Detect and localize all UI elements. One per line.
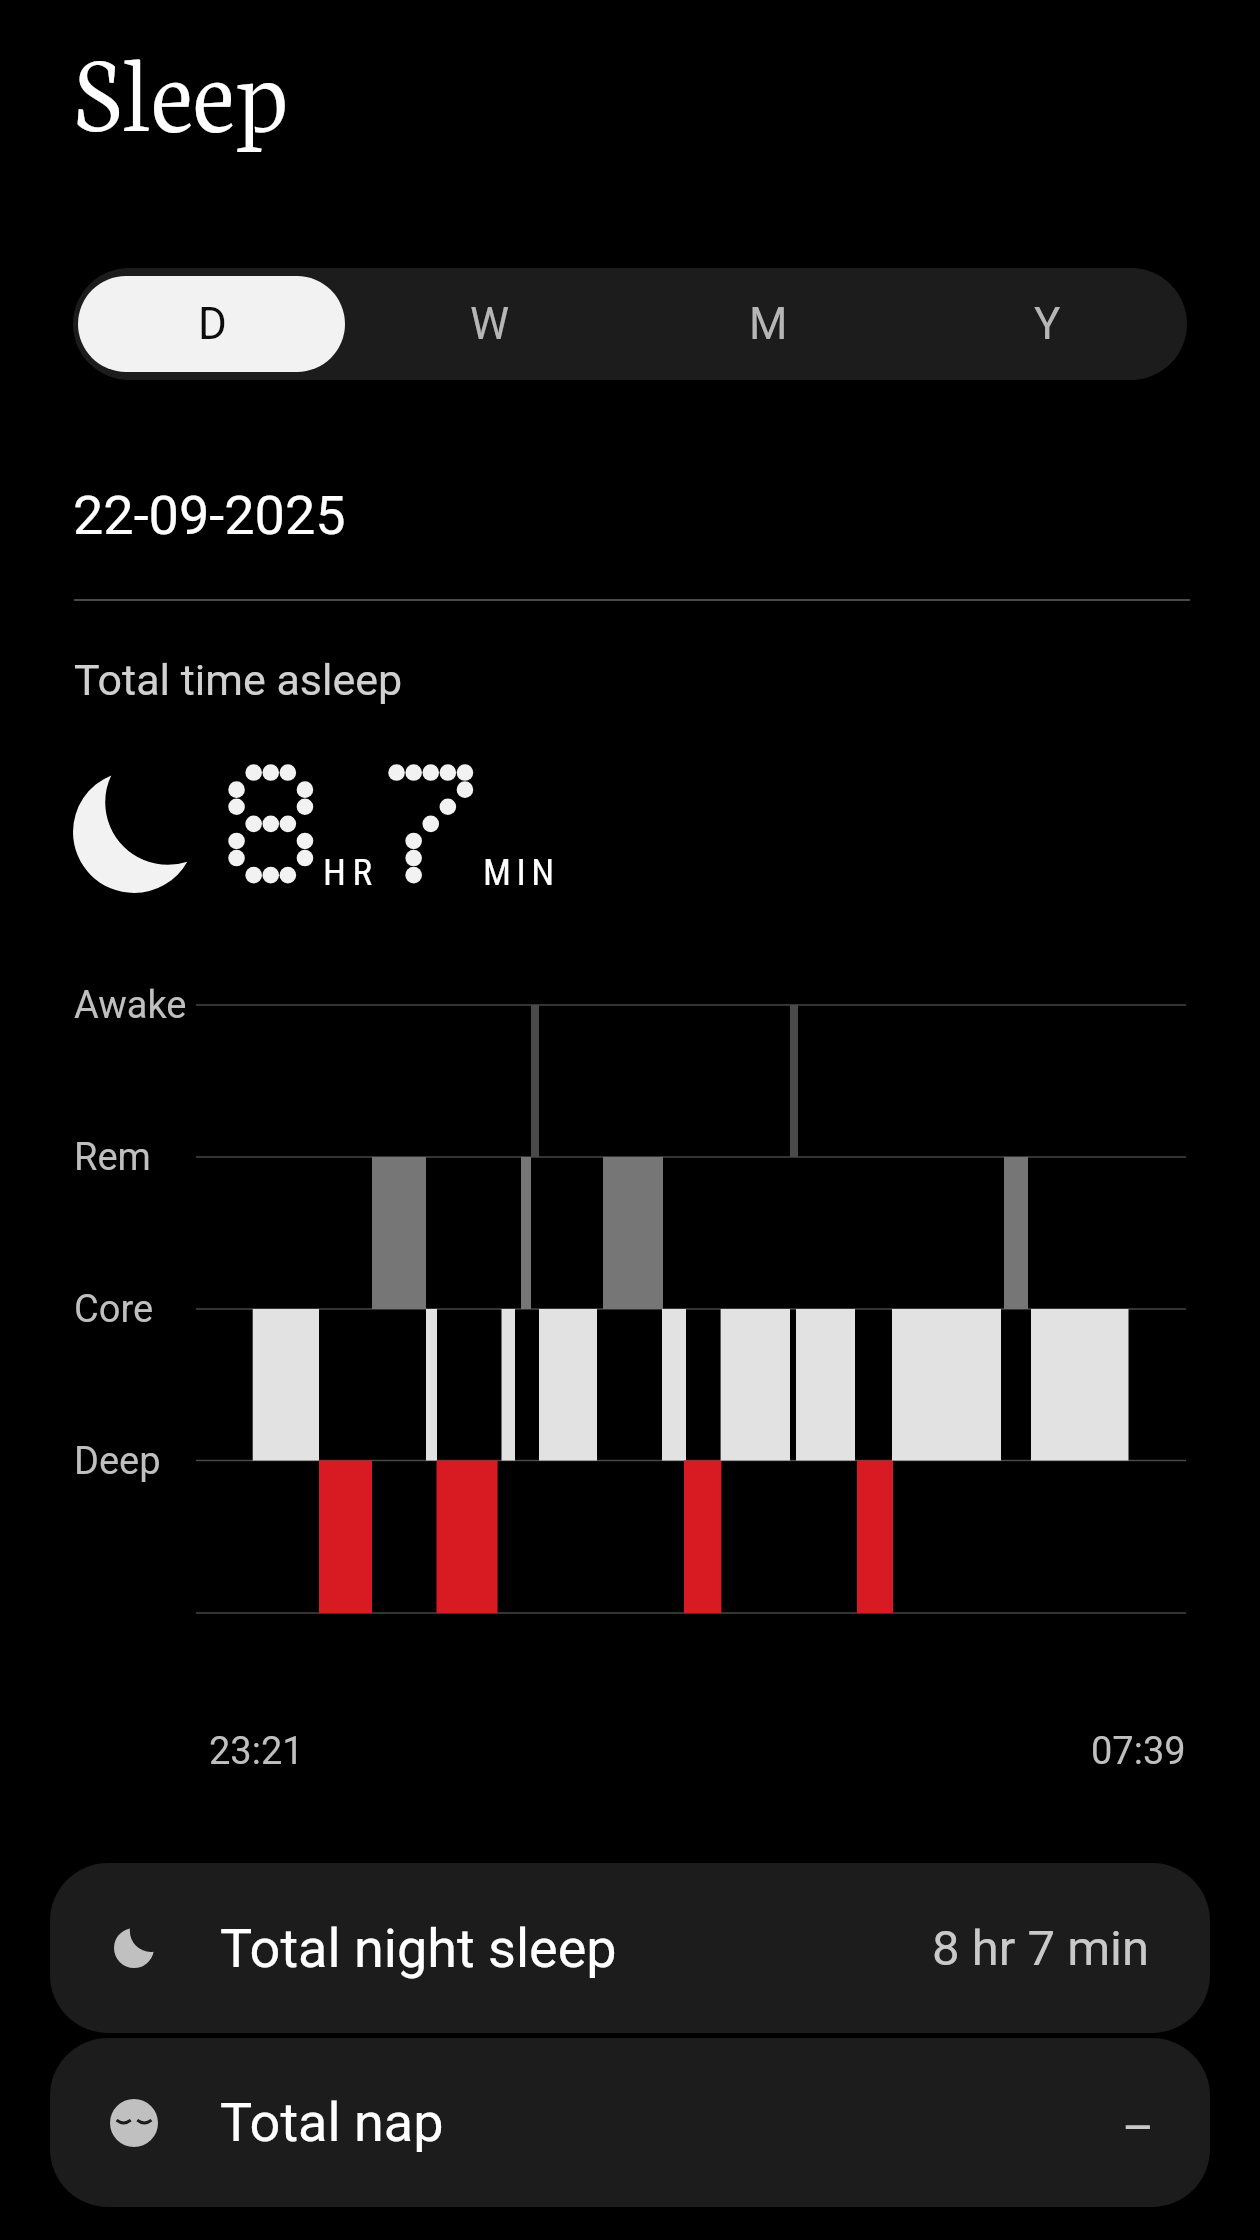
staticText: HR (323, 851, 379, 894)
button[interactable]: W (351, 268, 629, 380)
button[interactable]: Total night sleep (50, 1863, 1210, 2033)
button[interactable]: M (629, 268, 908, 380)
other: Sleep duration (73, 771, 195, 893)
staticText: Rem (74, 1135, 151, 1180)
staticText: Core (74, 1287, 154, 1332)
staticText: W (470, 298, 510, 350)
staticText: Total nap (220, 2091, 444, 2154)
staticText: Deep (74, 1439, 161, 1484)
button[interactable]: Total nap (50, 2038, 1210, 2207)
staticText: M (749, 298, 788, 350)
staticText: 22-09-2025 (73, 484, 346, 547)
staticText: – (1122, 2099, 1155, 2156)
staticText: Sleep (75, 16, 288, 158)
staticText: Awake (74, 983, 187, 1028)
staticText: MIN (483, 851, 560, 894)
staticText: 23:21 (209, 1729, 304, 1774)
staticText: Total night sleep (220, 1917, 617, 1980)
staticText: 07:39 (1091, 1729, 1186, 1774)
staticText: Y (1034, 298, 1061, 350)
button[interactable]: Y (908, 268, 1187, 380)
staticText: Total time asleep (74, 655, 403, 705)
staticText: 8 hr 7 min (932, 1920, 1150, 1977)
button[interactable]: D (73, 268, 351, 380)
staticText: D (198, 298, 227, 350)
